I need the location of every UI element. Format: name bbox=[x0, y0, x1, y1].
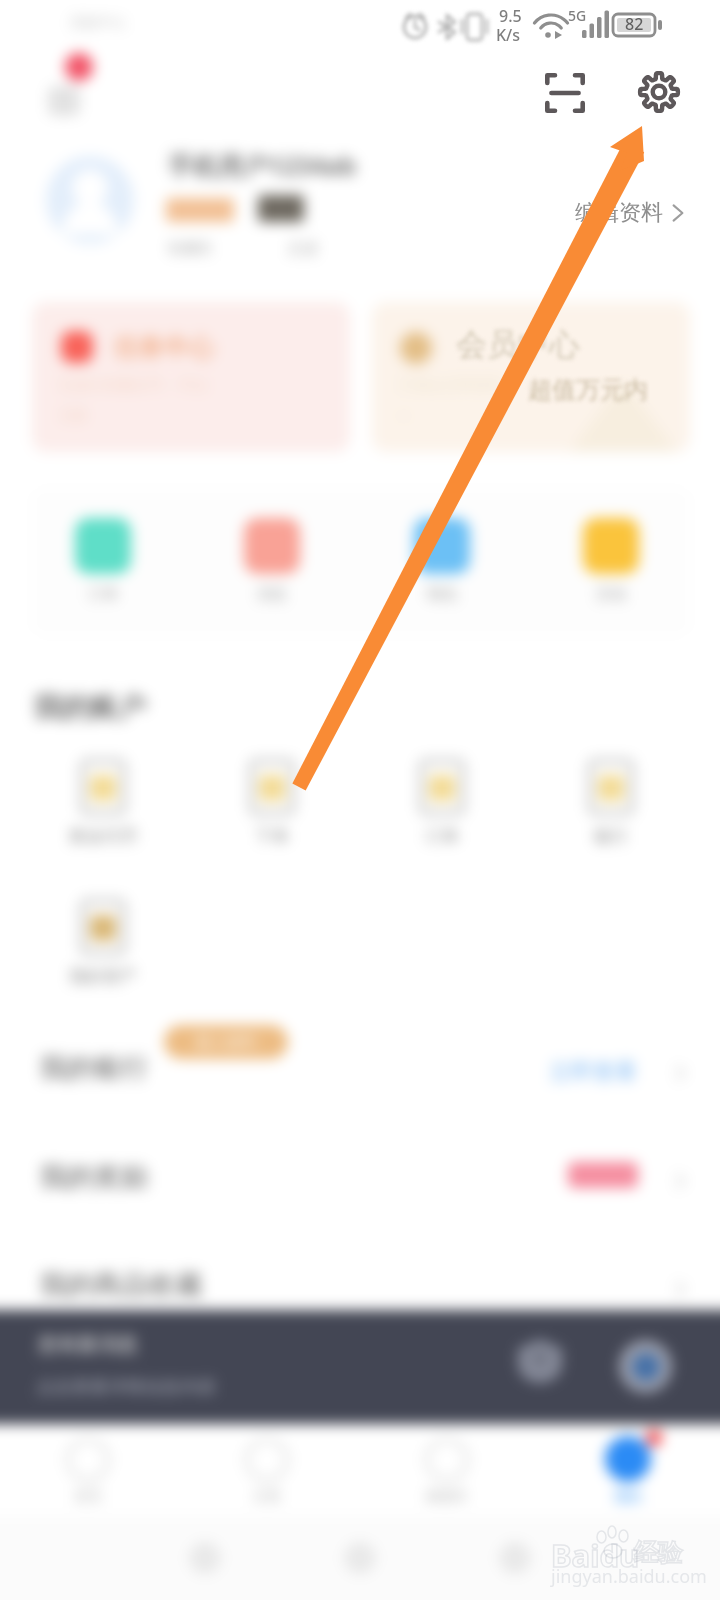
button[interactable] bbox=[583, 518, 639, 574]
button[interactable] bbox=[81, 900, 125, 954]
staticText: 首页 bbox=[43, 1488, 133, 1506]
staticText: jingyan.baidu.com bbox=[551, 1564, 707, 1589]
staticText: 经验 bbox=[634, 1538, 682, 1568]
staticText: 我的奖励 bbox=[40, 1160, 148, 1194]
staticText: 新人福利 bbox=[196, 1033, 256, 1052]
staticText: 编辑资料 bbox=[575, 199, 663, 227]
button[interactable]: Scan QR code bbox=[534, 62, 596, 124]
staticText: 消息 bbox=[232, 585, 312, 604]
button[interactable] bbox=[605, 1436, 651, 1482]
staticText: 会员中心 bbox=[456, 325, 580, 364]
button[interactable] bbox=[0, 1140, 720, 1216]
staticText: 您有新消息 bbox=[38, 1332, 138, 1357]
button[interactable] bbox=[46, 156, 134, 244]
button[interactable] bbox=[75, 518, 131, 574]
staticText: 我的商品收藏 bbox=[40, 1268, 202, 1302]
button[interactable] bbox=[589, 760, 633, 814]
staticText: 我的 bbox=[583, 1488, 673, 1506]
button[interactable] bbox=[420, 760, 464, 814]
button[interactable] bbox=[0, 1035, 720, 1111]
staticText: 钱包 bbox=[402, 585, 482, 604]
staticText: 我的资产 bbox=[48, 966, 158, 987]
staticText: 点击查看详情信息内容 bbox=[36, 1376, 216, 1399]
staticText: 收藏夹 bbox=[168, 239, 213, 258]
staticText: 开通会员享福利 bbox=[398, 376, 503, 395]
staticText: 82 bbox=[625, 13, 644, 35]
staticText: 我的账户 bbox=[34, 690, 146, 725]
staticText: 5G bbox=[568, 6, 587, 25]
button[interactable] bbox=[250, 760, 294, 814]
button[interactable]: Settings bbox=[628, 61, 690, 123]
staticText: 购物车 bbox=[402, 1488, 492, 1506]
button[interactable]: 编辑资料 bbox=[575, 197, 688, 229]
staticText: Baidu bbox=[551, 1534, 640, 1576]
button[interactable]: 您有新消息 bbox=[0, 1310, 720, 1424]
staticText: 黄金代币 bbox=[48, 826, 158, 847]
staticText: 银行 bbox=[556, 826, 666, 847]
staticText: K/s bbox=[496, 24, 521, 46]
button[interactable] bbox=[414, 518, 470, 574]
staticText: 分类 bbox=[222, 1488, 312, 1506]
staticText: 我的银行 bbox=[40, 1051, 148, 1085]
staticText: 活动 bbox=[571, 585, 651, 604]
staticText: 超值万元内 bbox=[528, 375, 648, 405]
button[interactable] bbox=[244, 518, 300, 574]
staticText: 下单 bbox=[217, 826, 327, 847]
staticText: 订单 bbox=[63, 585, 143, 604]
staticText: 订单 bbox=[387, 826, 497, 847]
staticText: 手机用户1234ab bbox=[168, 148, 356, 182]
staticText: 任务中心 bbox=[114, 332, 214, 363]
staticText: 9.5 bbox=[499, 5, 522, 27]
button[interactable] bbox=[81, 760, 125, 814]
staticText: 立即查看 bbox=[549, 1058, 637, 1086]
